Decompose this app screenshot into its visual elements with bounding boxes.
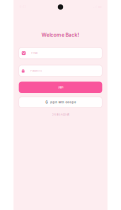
button[interactable]: Email — [19, 47, 102, 59]
staticText: Login — [58, 86, 63, 89]
staticText: G — [45, 100, 47, 104]
staticText: Email — [31, 52, 38, 55]
staticText: Password — [30, 69, 42, 72]
staticText: Create Account — [51, 113, 69, 116]
button[interactable]: Login — [19, 82, 102, 93]
button[interactable]: Password — [19, 65, 102, 76]
button[interactable]: Create Account — [51, 113, 69, 116]
button[interactable]: G — [19, 97, 102, 108]
staticText: Welcome Back! — [41, 32, 79, 38]
staticText: Login with Google — [49, 101, 75, 104]
